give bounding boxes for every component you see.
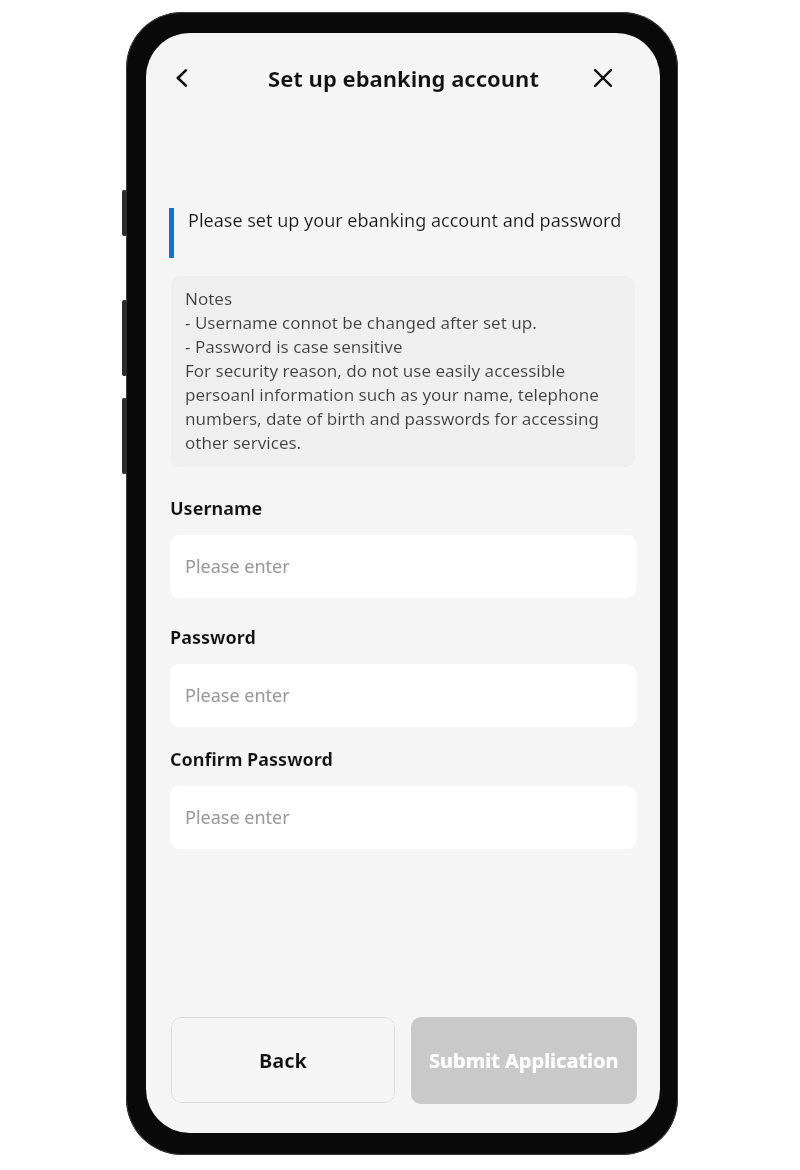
- button[interactable]: Back: [156, 52, 208, 104]
- staticText: Username: [170, 496, 263, 521]
- staticText: Notes - Username connot be changed after…: [185, 287, 623, 454]
- button[interactable]: Close: [577, 52, 629, 104]
- button[interactable]: Please enter: [170, 786, 636, 849]
- staticText: Please enter: [185, 683, 290, 708]
- staticText: Back: [259, 1047, 307, 1074]
- staticText: Submit Application: [429, 1047, 619, 1074]
- staticText: Password: [170, 625, 256, 650]
- staticText: Please set up your ebanking account and …: [188, 208, 622, 233]
- staticText: Set up ebanking account: [268, 63, 539, 93]
- button[interactable]: Please enter: [170, 535, 636, 598]
- staticText: Please enter: [185, 805, 290, 830]
- staticText: Confirm Password: [170, 747, 333, 772]
- button[interactable]: Submit Application: [411, 1017, 637, 1104]
- staticText: Please enter: [185, 554, 290, 579]
- button[interactable]: Back: [171, 1017, 395, 1103]
- button[interactable]: Please enter: [170, 664, 636, 727]
